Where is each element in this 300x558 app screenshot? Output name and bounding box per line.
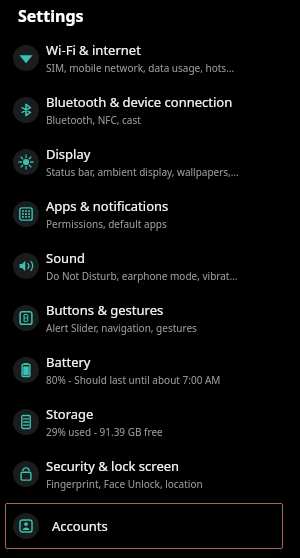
staticText: Sound [46,249,86,267]
other: Accounts [13,513,39,539]
other: Battery [13,357,39,383]
button[interactable]: Wi-Fi & internet [0,32,300,84]
button[interactable]: Security & lock screen [0,448,300,500]
staticText: Apps & notifications [46,197,169,215]
staticText: Alert Slider, navigation, gestures [46,321,197,335]
staticText: Settings [18,5,84,27]
staticText: Accounts [52,517,108,535]
staticText: Security & lock screen [46,457,180,475]
staticText: Display [46,145,91,163]
button[interactable]: Storage [0,396,300,448]
other: Display [13,149,39,175]
other: Security & lock screen [13,461,39,487]
staticText: Status bar, ambient display, wallpapers,… [46,165,239,179]
staticText: Permissions, default apps [46,217,167,231]
staticText: Battery [46,353,91,371]
staticText: Bluetooth, NFC, cast [46,113,141,127]
other: Storage [13,409,39,435]
staticText: Wi-Fi & internet [46,41,141,59]
staticText: Storage [46,405,94,423]
staticText: Buttons & gestures [46,301,164,319]
button[interactable]: Apps & notifications [0,188,300,240]
other: Apps & notifications [13,201,39,227]
staticText: Do Not Disturb, earphone mode, vibrat… [46,269,238,283]
button[interactable]: Battery [0,344,300,396]
other: Wi-Fi & internet [13,45,39,71]
staticText: Fingerprint, Face Unlock, location [46,477,203,491]
other: Buttons & gestures [13,305,39,331]
button[interactable]: Display [0,136,300,188]
button[interactable]: Buttons & gestures [0,292,300,344]
staticText: 29% used - 91.39 GB free [46,425,163,439]
other: Bluetooth & device connection [13,97,39,123]
button[interactable]: Bluetooth & device connection [0,84,300,136]
button[interactable]: Sound [0,240,300,292]
staticText: SIM, mobile network, data usage, hots… [46,61,235,75]
staticText: 80% - Should last until about 7:00 AM [46,373,221,387]
staticText: Bluetooth & device connection [46,93,233,111]
other: Sound [13,253,39,279]
button[interactable]: Accounts [5,503,283,549]
